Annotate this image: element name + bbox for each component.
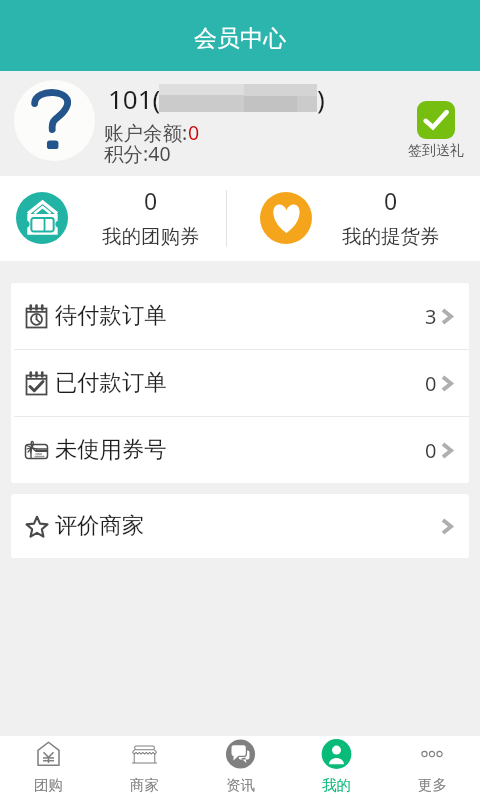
staticText: 账户余额:	[104, 119, 188, 146]
button[interactable]: 未使用券号	[11, 417, 469, 483]
staticText: 3	[425, 303, 437, 330]
staticText: 我的团购券	[102, 224, 200, 249]
staticText: 已付款订单	[55, 369, 167, 397]
button[interactable]: 0	[0, 176, 240, 261]
button[interactable]: 评价商家	[11, 494, 469, 558]
staticText: 101(	[108, 81, 161, 116]
button[interactable]: 签到送礼	[404, 101, 468, 160]
button[interactable]: 商家	[96, 736, 192, 800]
staticText: 资讯	[226, 776, 255, 794]
button[interactable]: 资讯	[192, 736, 288, 800]
staticText: 签到送礼	[408, 142, 464, 160]
staticText: 我的	[322, 776, 351, 794]
staticText: 积分:40	[104, 140, 171, 167]
staticText: 我的提货券	[342, 224, 440, 249]
staticText: 更多	[418, 776, 447, 794]
staticText: 团购	[34, 776, 63, 794]
staticText: 0	[384, 185, 398, 216]
button[interactable]: Avatar	[14, 80, 95, 161]
staticText: 0	[188, 119, 200, 146]
button[interactable]: 我的	[288, 736, 384, 800]
staticText: 待付款订单	[55, 302, 167, 330]
staticText: 会员中心	[194, 24, 286, 53]
staticText: 0	[144, 185, 158, 216]
button[interactable]: 已付款订单	[11, 350, 469, 416]
button[interactable]: 团购	[0, 736, 96, 800]
staticText: 未使用券号	[55, 436, 167, 464]
staticText: 0	[425, 437, 437, 464]
staticText: 0	[425, 370, 437, 397]
staticText: 商家	[130, 776, 159, 794]
staticText: 评价商家	[55, 512, 145, 540]
button[interactable]: 更多	[384, 736, 480, 800]
staticText: )	[317, 81, 325, 116]
button[interactable]: 0	[240, 176, 480, 261]
button[interactable]: 待付款订单	[11, 283, 469, 349]
